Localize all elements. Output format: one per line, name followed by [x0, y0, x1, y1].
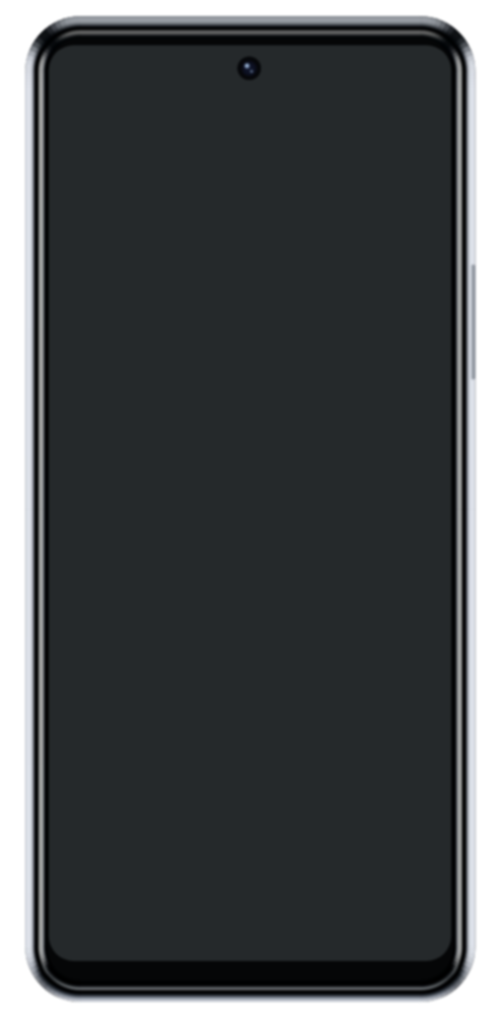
button[interactable]: Front camera — [237, 56, 262, 81]
button[interactable]: Power button — [466, 262, 478, 382]
